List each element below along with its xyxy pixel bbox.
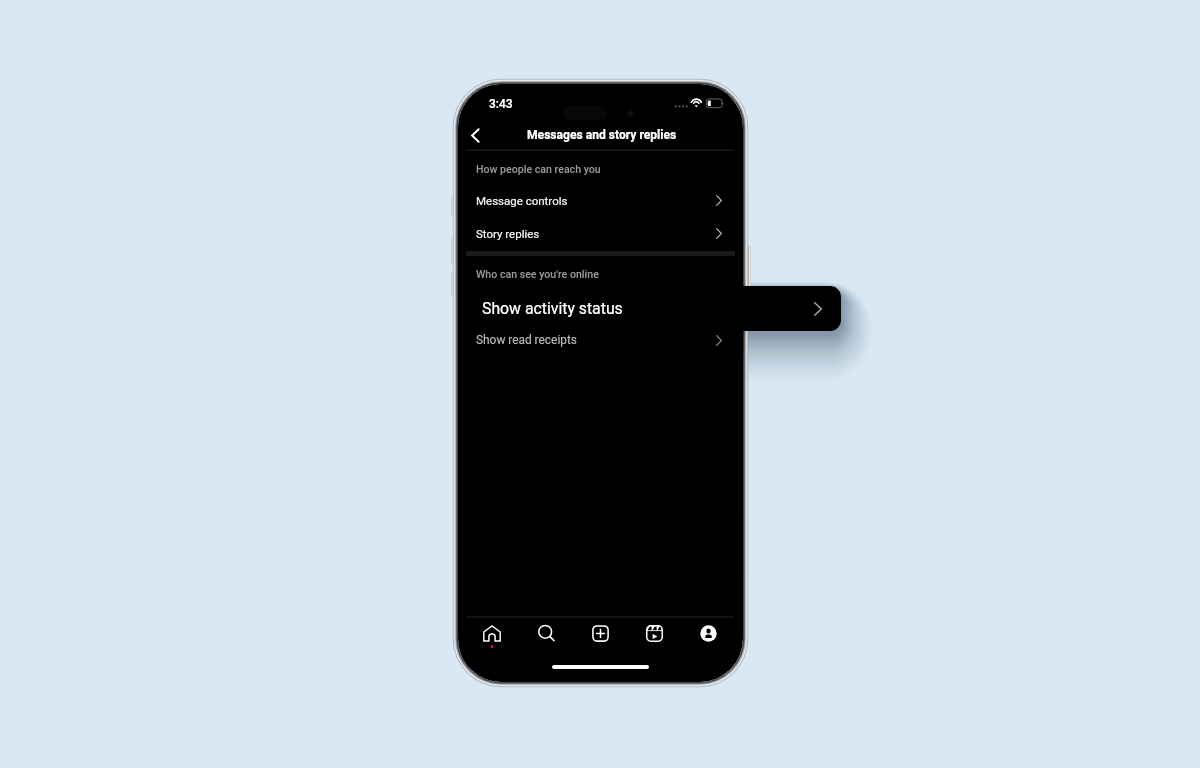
staticText: 3:43 <box>489 97 513 111</box>
button[interactable]: Show activity status <box>458 286 841 331</box>
button[interactable]: Story replies <box>458 217 743 249</box>
button[interactable]: Reels <box>637 616 671 650</box>
button[interactable]: Home <box>475 616 509 650</box>
staticText: Show read receipts <box>476 333 577 347</box>
button[interactable]: Back <box>464 124 486 146</box>
staticText: How people can reach you <box>476 163 601 175</box>
button[interactable]: Message controls <box>458 184 743 216</box>
staticText: Messages and story replies <box>527 128 677 142</box>
staticText: Show activity status <box>482 299 623 318</box>
button[interactable]: Search <box>529 616 563 650</box>
staticText: Message controls <box>476 194 568 207</box>
staticText: Story replies <box>476 227 540 240</box>
button[interactable]: Create <box>583 616 617 650</box>
button[interactable]: Show read receipts <box>458 324 743 356</box>
staticText: Who can see you're online <box>476 268 599 280</box>
button[interactable]: Profile <box>691 616 725 650</box>
